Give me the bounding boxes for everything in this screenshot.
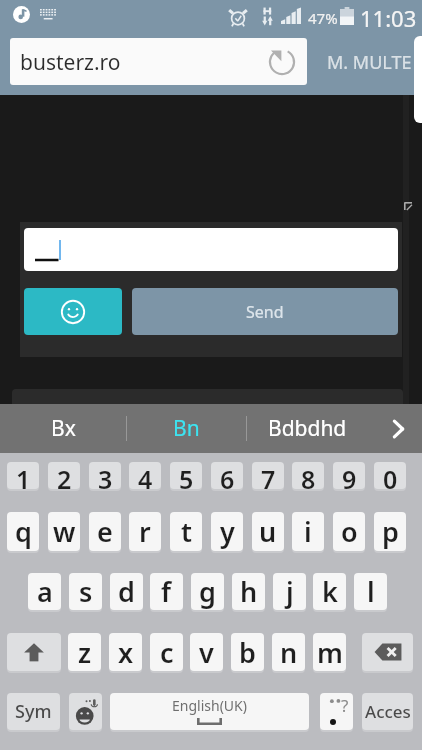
staticText: Sym: [15, 699, 52, 724]
staticText: s: [79, 573, 93, 610]
staticText: 2: [57, 462, 72, 489]
button[interactable]: q: [7, 512, 39, 551]
staticText: 4: [138, 462, 153, 489]
staticText: ?: [341, 694, 349, 717]
staticText: 3: [98, 462, 113, 489]
staticText: 11:03: [360, 3, 417, 33]
button[interactable]: 4: [129, 462, 161, 489]
staticText: 9: [342, 462, 357, 489]
other: Reload: [268, 48, 296, 76]
button[interactable]: u: [252, 512, 284, 551]
button[interactable]: 7: [252, 462, 284, 489]
staticText: q: [15, 513, 32, 550]
staticText: Acces: [365, 700, 411, 723]
button[interactable]: k: [313, 573, 346, 610]
staticText: o: [341, 513, 358, 550]
staticText: v: [199, 634, 214, 671]
button[interactable]: Space: [110, 693, 309, 730]
staticText: English(UK): [172, 696, 247, 715]
staticText: M. MULTE: [327, 50, 412, 75]
staticText: b: [239, 634, 256, 671]
staticText: c: [160, 634, 174, 671]
button[interactable]: Period and symbols: [320, 693, 353, 730]
staticText: e: [97, 513, 113, 550]
button[interactable]: More suggestions: [374, 404, 422, 453]
button[interactable]: d: [110, 573, 143, 610]
button[interactable]: Send: [132, 288, 398, 335]
button[interactable]: Acces: [362, 693, 413, 730]
button[interactable]: busterz.ro: [10, 38, 307, 85]
button[interactable]: b: [231, 633, 264, 671]
button[interactable]: Emoji: [24, 288, 122, 335]
staticText: Bx: [51, 414, 76, 443]
button[interactable]: x: [109, 633, 142, 671]
button[interactable]: n: [272, 633, 305, 671]
button[interactable]: t: [170, 512, 202, 551]
button[interactable]: j: [273, 573, 306, 610]
button[interactable]: 8: [292, 462, 324, 489]
button[interactable]: h: [232, 573, 265, 610]
staticText: Bn: [173, 414, 200, 443]
button[interactable]: 1: [7, 462, 39, 489]
staticText: h: [240, 573, 258, 610]
button[interactable]: s: [69, 573, 102, 610]
button[interactable]: m: [313, 633, 346, 671]
button[interactable]: l: [354, 573, 387, 610]
button[interactable]: c: [150, 633, 183, 671]
button[interactable]: 0: [374, 462, 406, 489]
staticText: busterz.ro: [20, 48, 121, 77]
staticText: m: [317, 634, 343, 671]
button[interactable]: 9: [333, 462, 365, 489]
button[interactable]: Backspace: [362, 633, 413, 671]
staticText: 8: [301, 462, 316, 489]
staticText: y: [220, 513, 235, 550]
button[interactable]: Sym: [7, 693, 60, 730]
button[interactable]: [24, 228, 398, 271]
button[interactable]: 5: [170, 462, 202, 489]
staticText: a: [37, 573, 53, 610]
button[interactable]: i: [292, 512, 324, 551]
staticText: 5: [179, 462, 194, 489]
staticText: i: [304, 513, 312, 550]
button[interactable]: o: [333, 512, 365, 551]
staticText: l: [367, 573, 375, 610]
button[interactable]: Bx: [0, 404, 126, 453]
button[interactable]: e: [89, 512, 121, 551]
button[interactable]: f: [150, 573, 183, 610]
button[interactable]: Shift: [7, 633, 61, 671]
button[interactable]: w: [48, 512, 80, 551]
button[interactable]: Bdbdhd: [246, 404, 368, 453]
button[interactable]: 2: [48, 462, 80, 489]
staticText: k: [322, 573, 338, 610]
button[interactable]: Emoji / voice input: [69, 693, 102, 730]
staticText: t: [181, 513, 192, 550]
staticText: p: [382, 513, 399, 550]
button[interactable]: M. MULTE: [319, 39, 419, 86]
staticText: d: [118, 573, 135, 610]
staticText: 47%: [308, 8, 338, 28]
staticText: x: [118, 634, 134, 671]
button[interactable]: p: [374, 512, 406, 551]
staticText: Bdbdhd: [268, 414, 347, 443]
staticText: j: [286, 573, 294, 610]
staticText: u: [259, 513, 277, 550]
button[interactable]: v: [190, 633, 223, 671]
button[interactable]: y: [211, 512, 243, 551]
staticText: 6: [220, 462, 235, 489]
staticText: f: [161, 573, 172, 610]
button[interactable]: 6: [211, 462, 243, 489]
button[interactable]: 3: [89, 462, 121, 489]
staticText: w: [53, 513, 76, 550]
button[interactable]: Bn: [126, 404, 246, 453]
staticText: z: [78, 634, 92, 671]
button[interactable]: z: [68, 633, 101, 671]
button[interactable]: r: [129, 512, 161, 551]
button[interactable]: g: [191, 573, 224, 610]
staticText: 7: [261, 462, 276, 489]
staticText: g: [199, 573, 216, 610]
staticText: Send: [246, 301, 284, 323]
staticText: 1: [16, 462, 31, 489]
staticText: 0: [383, 462, 398, 489]
staticText: n: [280, 634, 298, 671]
button[interactable]: a: [28, 573, 61, 610]
